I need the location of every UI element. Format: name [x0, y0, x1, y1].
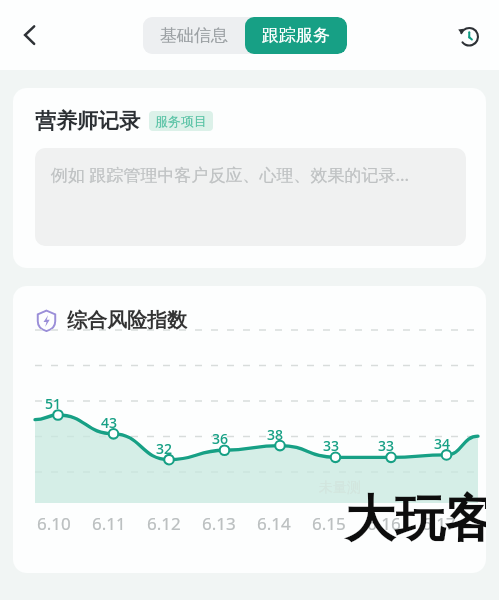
staticText: 6.17 — [422, 512, 456, 535]
button[interactable]: 跟踪服务 — [245, 17, 347, 54]
staticText: 6.12 — [147, 512, 181, 535]
staticText: 6.10 — [37, 512, 71, 535]
staticText: 营养师记录 — [35, 108, 140, 134]
staticText: 43 — [101, 413, 118, 432]
button[interactable]: History — [445, 12, 491, 58]
staticText: 综合风险指数 — [67, 308, 187, 333]
button[interactable]: Back — [6, 11, 54, 59]
staticText: 6.13 — [202, 512, 236, 535]
staticText: 6.16 — [367, 512, 401, 535]
staticText: 大玩客 — [345, 488, 486, 551]
staticText: 33 — [323, 436, 340, 455]
button[interactable]: 例如 跟踪管理中客户反应、心理、效果的记录... — [35, 148, 466, 246]
staticText: 例如 跟踪管理中客户反应、心理、效果的记录... — [51, 163, 410, 186]
staticText: 6.11 — [92, 512, 126, 535]
staticText: 34 — [434, 434, 451, 453]
staticText: 38 — [267, 425, 284, 444]
staticText: 36 — [212, 429, 229, 448]
staticText: 33 — [378, 436, 395, 455]
staticText: 未量测 — [319, 479, 361, 497]
staticText: 跟踪服务 — [262, 25, 330, 46]
button[interactable]: 基础信息 — [143, 17, 245, 54]
staticText: 6.15 — [312, 512, 346, 535]
staticText: 32 — [156, 439, 173, 458]
staticText: 基础信息 — [160, 25, 228, 46]
staticText: 51 — [45, 394, 62, 413]
staticText: 6.14 — [257, 512, 291, 535]
staticText: 服务项目 — [155, 113, 207, 129]
